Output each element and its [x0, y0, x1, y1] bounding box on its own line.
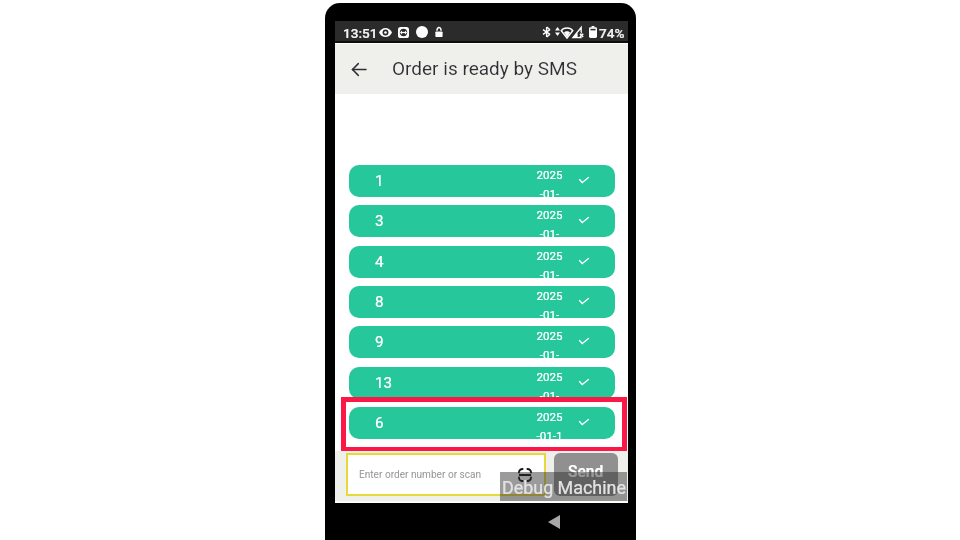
button[interactable]: 3 [349, 205, 615, 237]
staticText: 2025-01- [536, 208, 563, 237]
staticText: Send [568, 463, 604, 481]
staticText: 3 [375, 212, 384, 230]
button[interactable]: Back [541, 503, 567, 540]
button[interactable]: Enter order number or scan [346, 453, 546, 496]
button[interactable]: Back [344, 44, 374, 94]
button[interactable]: Scan [513, 463, 537, 487]
staticText: Debug Machine [502, 477, 626, 498]
staticText: Order is ready by SMS [392, 57, 577, 79]
button[interactable]: 6 [349, 407, 615, 439]
staticText: 2025-01- [536, 249, 563, 278]
staticText: 2025-01- [536, 370, 563, 399]
staticText: 2025-01-1 [536, 410, 563, 439]
staticText: Enter order number or scan [359, 469, 482, 481]
button[interactable]: Send [554, 453, 618, 496]
button[interactable]: 9 [349, 326, 615, 358]
button[interactable]: 4 [349, 246, 615, 278]
button[interactable]: 8 [349, 286, 615, 318]
staticText: 8 [375, 293, 384, 311]
staticText: 13:51 [343, 25, 378, 41]
staticText: 6 [375, 414, 384, 432]
staticText: 2025-01- [536, 329, 563, 358]
staticText: 9 [375, 333, 384, 351]
staticText: 4 [375, 253, 384, 271]
staticText: 1 [375, 172, 384, 190]
staticText: 2025-01- [536, 289, 563, 318]
staticText: 2025-01- [536, 168, 563, 197]
button[interactable]: 1 [349, 165, 615, 197]
button[interactable]: 13 [349, 367, 615, 399]
staticText: 74% [599, 25, 625, 41]
staticText: 13 [375, 374, 393, 392]
